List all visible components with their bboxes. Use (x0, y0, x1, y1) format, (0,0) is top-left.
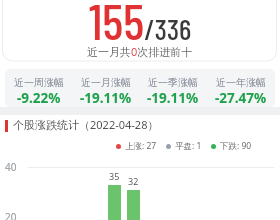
button[interactable]: 平盘: 1 (166, 140, 202, 152)
staticText: 近一周涨幅 (14, 76, 64, 89)
button[interactable]: 个股涨跌统计（2022-04-28） (13, 117, 159, 132)
button[interactable]: 155/336 (0, 0, 280, 50)
staticText: -19.11% (80, 89, 132, 107)
button[interactable]: 近一季涨幅 (139, 69, 207, 107)
staticText: 40 (5, 160, 17, 174)
staticText: 20 (5, 210, 17, 220)
staticText: 近一月涨幅 (81, 76, 131, 89)
staticText: -19.11% (147, 89, 199, 107)
staticText: 32 (128, 175, 139, 187)
staticText: 近一年涨幅 (216, 76, 266, 89)
staticText: 上涨: 27 (125, 140, 157, 152)
staticText: 155/336 (89, 0, 192, 50)
button[interactable]: 近一年涨幅 (207, 69, 275, 107)
staticText: 下跌: 90 (220, 140, 252, 152)
staticText: -9.22% (17, 89, 61, 107)
staticText: 35 (109, 170, 120, 182)
staticText: 个股涨跌统计（2022-04-28） (13, 117, 159, 132)
staticText: 近一季涨幅 (148, 76, 198, 89)
button[interactable]: 下跌: 90 (211, 140, 252, 152)
button[interactable]: 近一周涨幅 (5, 69, 72, 107)
staticText: 近一月共0次排进前十 (87, 44, 193, 59)
button[interactable]: 上涨: 27 (116, 140, 157, 152)
staticText: 平盘: 1 (175, 140, 202, 152)
staticText: -27.47% (215, 89, 267, 107)
button[interactable]: 近一月涨幅 (72, 69, 139, 107)
